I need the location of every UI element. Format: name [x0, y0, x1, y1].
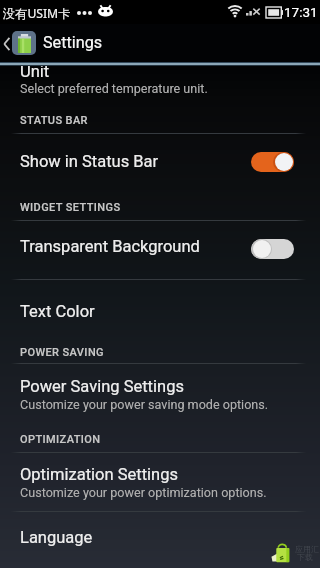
button[interactable]: Transparent Background	[251, 239, 294, 259]
staticText: Text Color	[20, 302, 95, 321]
button[interactable]: Text Color	[0, 281, 320, 326]
button[interactable]: Navigate up	[0, 24, 40, 62]
staticText: Customize your power saving mode options…	[20, 397, 269, 412]
button[interactable]: Language	[0, 513, 320, 558]
staticText: Unit	[20, 62, 50, 81]
staticText: 17:31	[284, 4, 318, 20]
button[interactable]: Show in Status Bar	[251, 152, 294, 172]
staticText: Power Saving Settings	[20, 377, 184, 396]
staticText: STATUS BAR	[20, 114, 88, 127]
staticText: Transparent Background	[20, 237, 200, 256]
button[interactable]: Optimization Settings	[0, 454, 320, 500]
staticText: Language	[20, 528, 93, 547]
staticText: 下载	[297, 552, 313, 562]
staticText: Settings	[43, 33, 103, 52]
button[interactable]: Transparent Background	[0, 222, 320, 272]
button[interactable]: Power Saving Settings	[0, 365, 320, 411]
staticText: Show in Status Bar	[20, 152, 159, 171]
staticText: 没有USIM卡	[3, 5, 71, 22]
staticText: WIDGET SETTINGS	[20, 201, 121, 214]
staticText: Customize your power optimization option…	[20, 485, 267, 500]
staticText: Optimization Settings	[20, 465, 178, 484]
button[interactable]: Unit	[0, 58, 320, 102]
staticText: POWER SAVING	[20, 346, 104, 359]
button[interactable]: Show in Status Bar	[0, 136, 320, 186]
staticText: Select preferred temperature unit.	[20, 81, 208, 96]
staticText: 应用汇	[295, 544, 319, 554]
staticText: OPTIMIZATION	[20, 433, 101, 446]
